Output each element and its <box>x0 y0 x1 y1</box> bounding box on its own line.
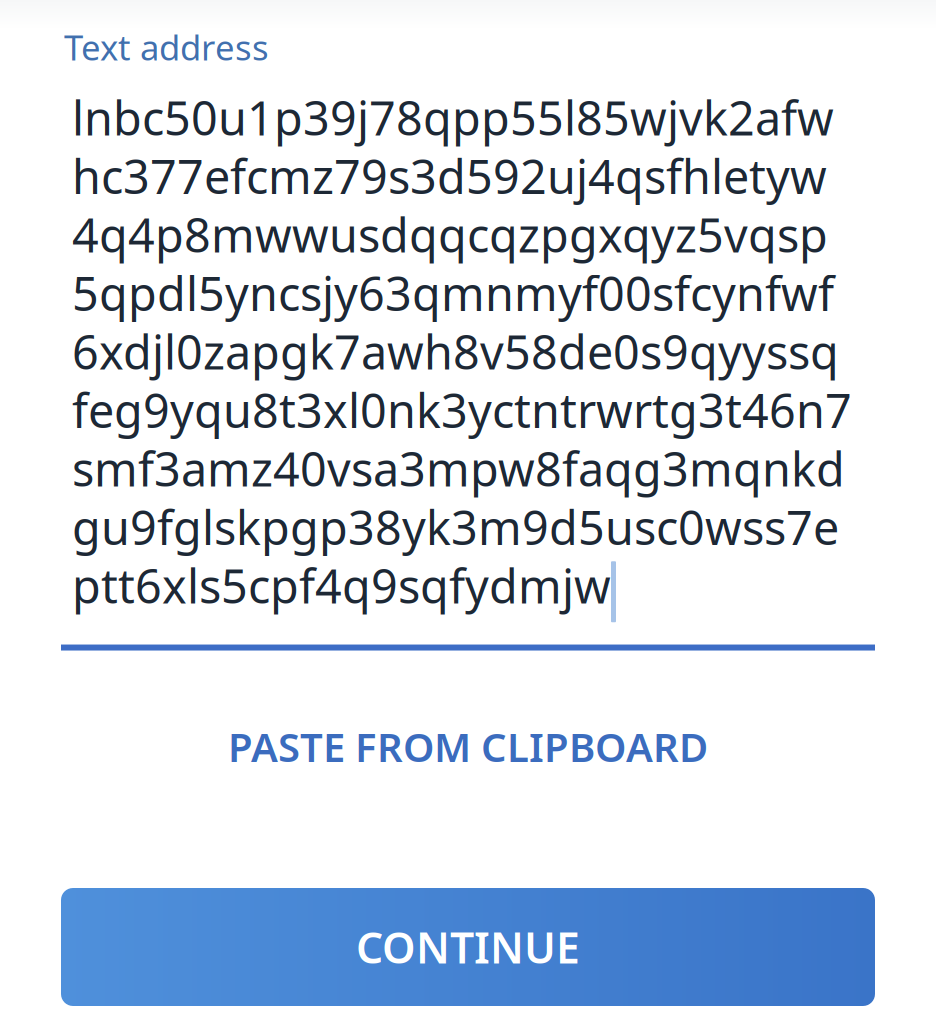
staticText: Text address <box>64 24 269 70</box>
button[interactable]: PASTE FROM CLIPBOARD <box>0 698 936 794</box>
staticText: PASTE FROM CLIPBOARD <box>228 720 708 773</box>
staticText: 5qpdl5yncsjy63qmnmyf00sfcynfwf <box>72 262 834 324</box>
staticText: gu9fglskpgp38yk3m9d5usc0wss7e <box>72 496 839 558</box>
staticText: hc377efcmz79s3d592uj4qsfhletyw <box>72 145 827 207</box>
staticText: smf3amz40vsa3mpw8faqg3mqnkd <box>72 437 845 499</box>
staticText: 6xdjl0zapgk7awh8v58de0s9qyyssq <box>72 320 839 382</box>
button[interactable]: Text address <box>0 0 936 650</box>
staticText: ptt6xls5cpf4q9sqfydmjw <box>72 554 611 616</box>
staticText: lnbc50u1p39j78qpp55l85wjvk2afw <box>72 86 834 148</box>
staticText: 4q4p8mwwusdqqcqzpgxqyz5vqsp <box>72 203 828 265</box>
staticText: CONTINUE <box>356 919 580 975</box>
staticText: feg9yqu8t3xl0nk3yctntrwrtg3t46n7 <box>72 379 852 441</box>
button[interactable]: CONTINUE <box>61 888 875 1006</box>
